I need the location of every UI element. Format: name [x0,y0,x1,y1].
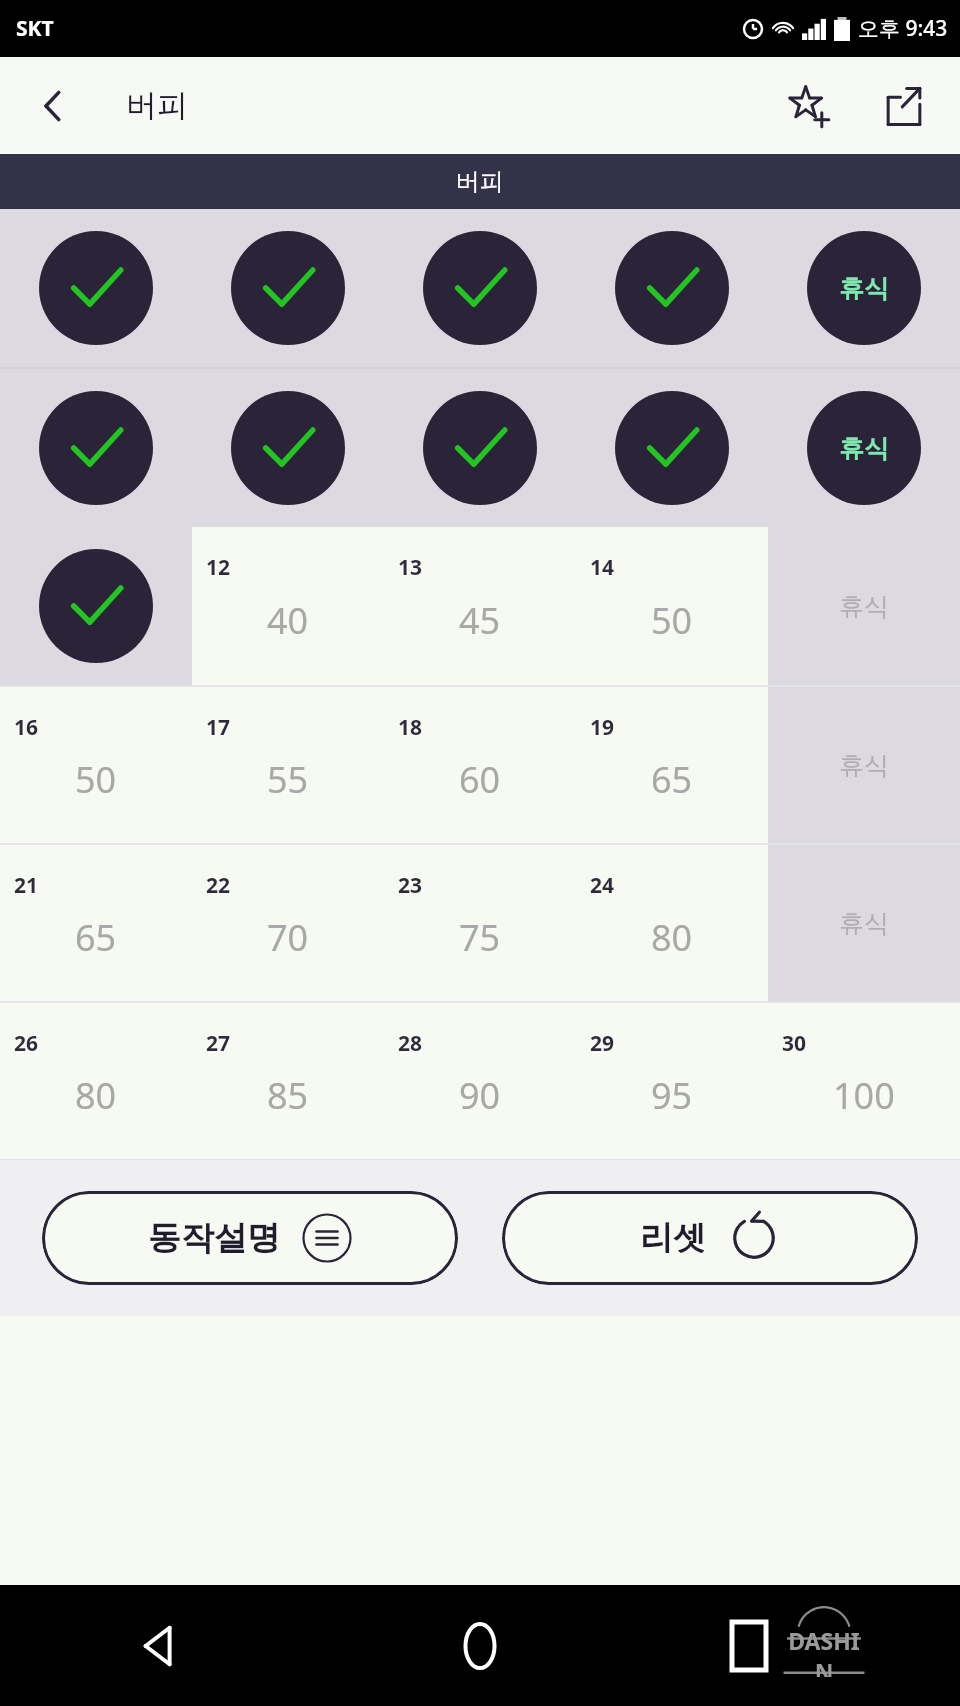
button[interactable]: Share [874,76,934,136]
button[interactable]: 16 [0,687,192,843]
button[interactable]: 휴식 [768,209,960,367]
staticText: 휴식 [839,908,889,939]
button[interactable]: 버피 [0,154,960,209]
staticText: 30 [782,1029,807,1058]
staticText: 90 [459,1071,501,1120]
staticText: 27 [206,1029,231,1058]
button[interactable]: 휴식 [768,369,960,527]
button[interactable]: 29 [576,1003,768,1159]
button[interactable]: 19 [576,687,768,843]
button[interactable]: 13 [384,527,576,685]
button[interactable]: 17 [192,687,384,843]
button[interactable]: 휴식 [768,845,960,1001]
staticText: 45 [459,596,501,645]
button[interactable]: 22 [192,845,384,1001]
button[interactable]: Recents [640,1585,960,1706]
staticText: 버피 [126,86,188,125]
staticText: 13 [398,553,423,582]
staticText: 28 [398,1029,423,1058]
staticText: 버피 [456,167,504,197]
staticText: 40 [267,596,309,645]
staticText: 75 [459,913,501,962]
button[interactable]: 동작설명 [42,1191,458,1285]
button[interactable]: 27 [192,1003,384,1159]
staticText: 24 [590,871,615,900]
button[interactable] [576,369,768,527]
button[interactable] [384,209,576,367]
button[interactable]: Back [0,1585,320,1706]
button[interactable]: 12 [192,527,384,685]
button[interactable] [192,369,384,527]
button[interactable]: 26 [0,1003,192,1159]
button[interactable]: 23 [384,845,576,1001]
staticText: 85 [267,1071,309,1120]
button[interactable]: 18 [384,687,576,843]
button[interactable] [192,209,384,367]
staticText: 휴식 [839,273,889,304]
button[interactable]: 28 [384,1003,576,1159]
staticText: 14 [590,553,615,582]
staticText: 95 [651,1071,693,1120]
staticText: 50 [651,596,693,645]
button[interactable]: Home [320,1585,640,1706]
staticText: 휴식 [839,433,889,464]
button[interactable] [0,209,192,367]
button[interactable]: 21 [0,845,192,1001]
staticText: 26 [14,1029,39,1058]
staticText: 오후 9:43 [858,14,948,43]
staticText: 70 [267,913,309,962]
staticText: 18 [398,713,423,742]
button[interactable]: 14 [576,527,768,685]
button[interactable]: Favorite [778,76,838,136]
staticText: 29 [590,1029,615,1058]
staticText: 휴식 [839,750,889,781]
staticText: 리셋 [640,1217,706,1259]
staticText: 50 [75,755,117,804]
staticText: 19 [590,713,615,742]
staticText: 동작설명 [148,1217,280,1259]
staticText: 65 [651,755,693,804]
staticText: 60 [459,755,501,804]
staticText: 21 [14,871,39,900]
staticText: 80 [75,1071,117,1120]
button[interactable] [0,527,192,685]
button[interactable]: 휴식 [768,527,960,685]
staticText: SKT [16,14,54,43]
staticText: 100 [833,1071,895,1120]
staticText: 17 [206,713,231,742]
staticText: DASHIN [780,1625,868,1677]
button[interactable] [384,369,576,527]
button[interactable]: 리셋 [502,1191,918,1285]
button[interactable]: 24 [576,845,768,1001]
button[interactable]: 30 [768,1003,960,1159]
staticText: 12 [206,553,231,582]
staticText: 80 [651,913,693,962]
button[interactable]: Back [26,78,82,134]
staticText: 22 [206,871,231,900]
staticText: 55 [267,755,309,804]
staticText: 65 [75,913,117,962]
staticText: 23 [398,871,423,900]
button[interactable] [0,369,192,527]
button[interactable] [576,209,768,367]
button[interactable]: 휴식 [768,687,960,843]
staticText: 16 [14,713,39,742]
staticText: 휴식 [839,591,889,622]
